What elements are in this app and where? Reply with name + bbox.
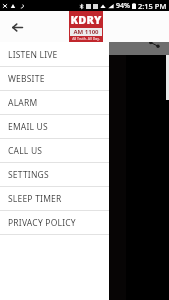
staticText: 2:15 PM — [138, 1, 167, 11]
staticText: SETTINGS — [8, 169, 49, 181]
staticText: PRIVACY POLICY — [8, 217, 76, 229]
button[interactable]: Back — [4, 14, 30, 40]
staticText: EMAIL US — [8, 121, 48, 133]
button[interactable]: ALARM — [0, 91, 109, 114]
staticText: All Truth. All Day. — [72, 36, 100, 41]
staticText: ALARM — [8, 97, 38, 109]
staticText: CALL US — [8, 145, 43, 157]
staticText: KDRY — [70, 12, 102, 27]
staticText: SLEEP TIMER — [8, 193, 62, 205]
staticText: LISTEN LIVE — [8, 49, 58, 61]
button[interactable]: SETTINGS — [0, 163, 109, 186]
button[interactable]: WEBSITE — [0, 67, 109, 90]
staticText: 94% — [116, 1, 130, 11]
button[interactable]: SLEEP TIMER — [0, 187, 109, 210]
button[interactable]: Share — [145, 33, 163, 51]
staticText: AM 1100 — [73, 28, 99, 36]
staticText: WEBSITE — [8, 73, 45, 85]
button[interactable]: PRIVACY POLICY — [0, 211, 109, 234]
button[interactable]: CALL US — [0, 139, 109, 162]
button[interactable]: EMAIL US — [0, 115, 109, 138]
button[interactable]: LISTEN LIVE — [0, 43, 109, 66]
